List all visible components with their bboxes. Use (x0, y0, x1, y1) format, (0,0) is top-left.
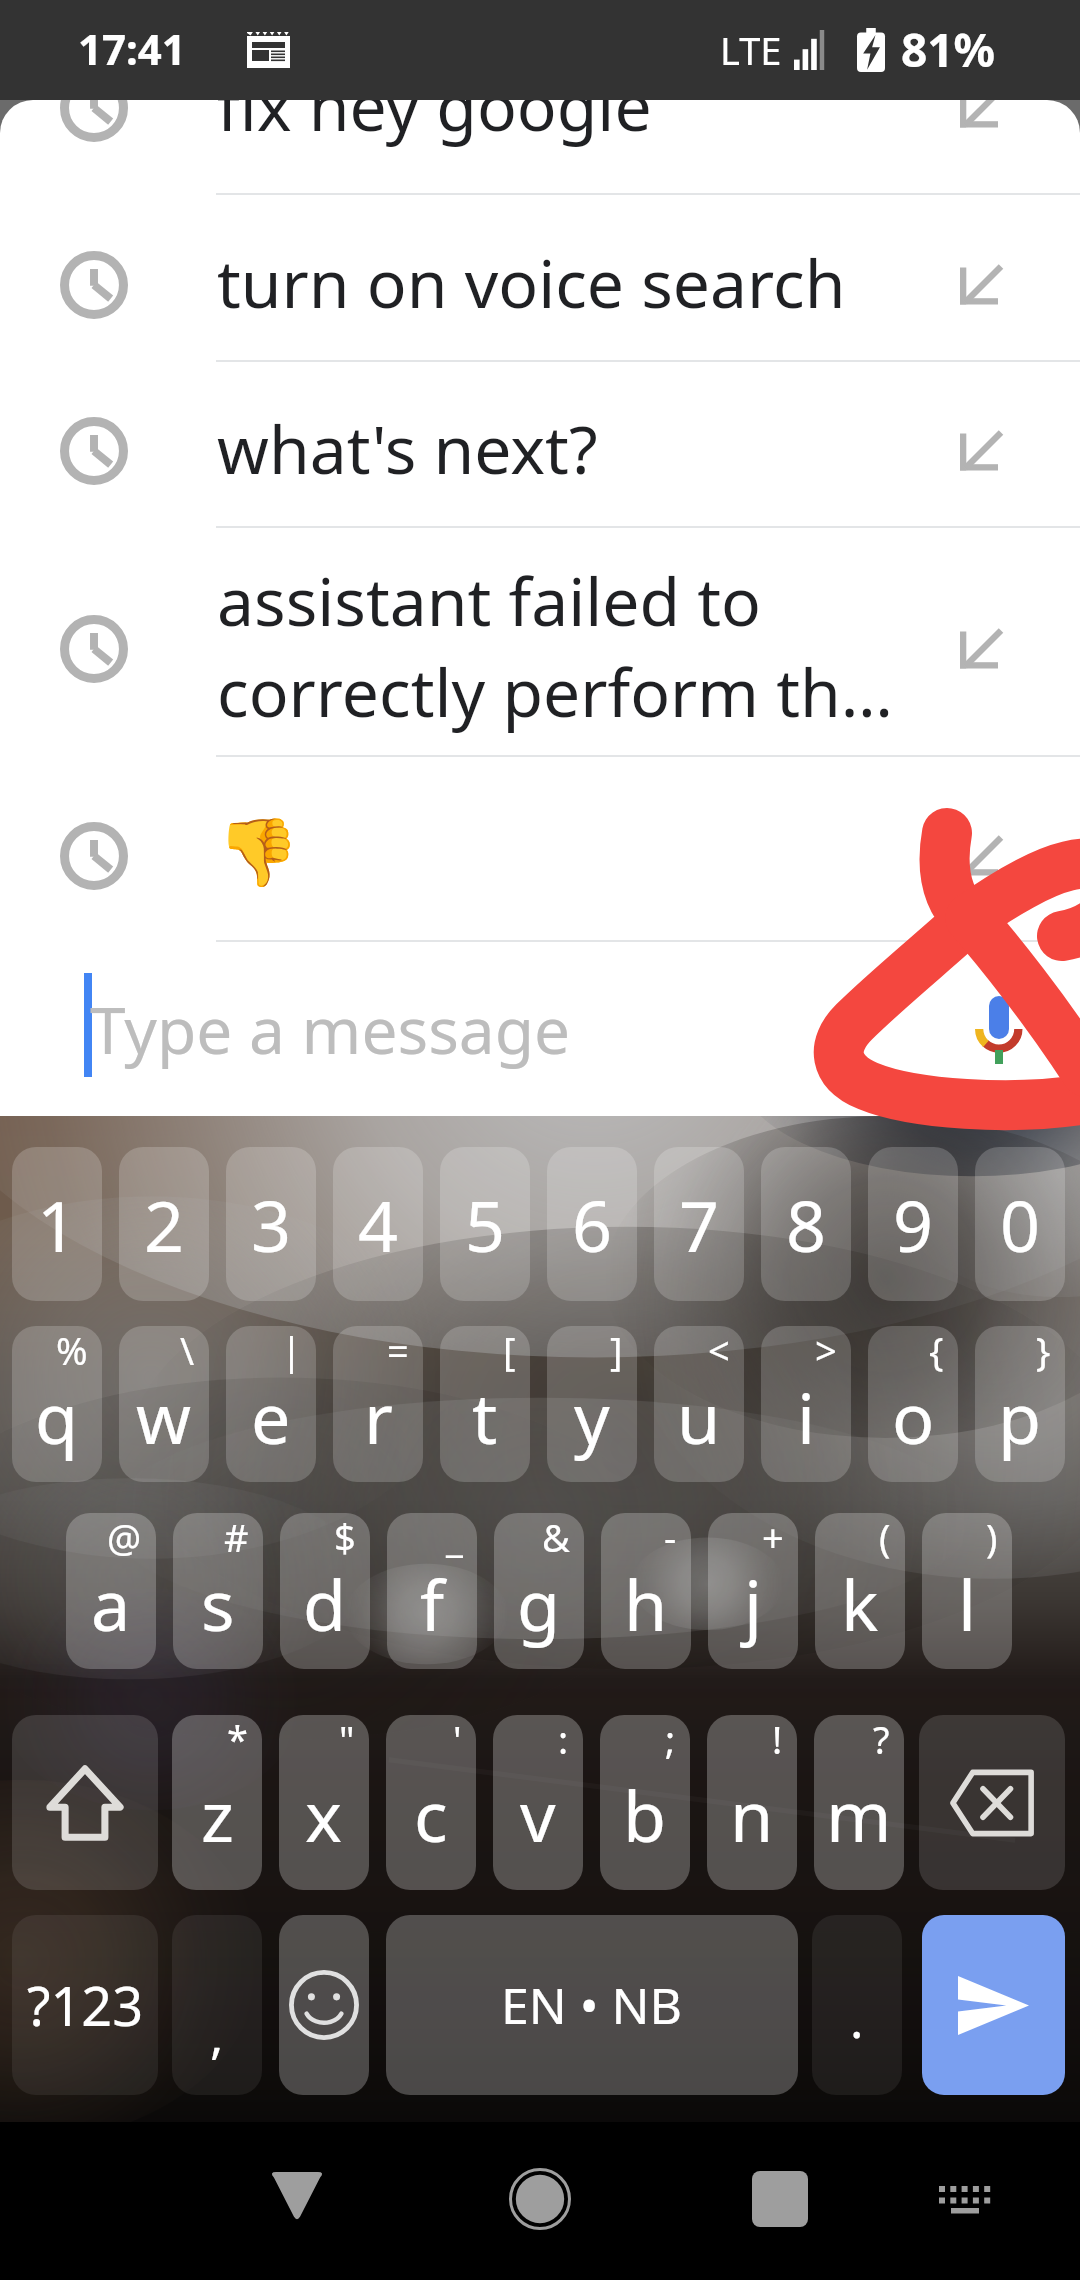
staticText: what's next? (217, 403, 598, 493)
button[interactable]: l (922, 1513, 1012, 1669)
staticText: { (929, 1326, 944, 1376)
button[interactable]: EN • NB (386, 1915, 798, 2095)
button[interactable]: 👎 (0, 757, 1080, 940)
staticText: i (797, 1369, 816, 1464)
staticText: & (542, 1513, 570, 1563)
staticText: - (664, 1513, 677, 1563)
button[interactable]: c (386, 1715, 476, 1890)
staticText: 0 (1000, 1177, 1041, 1272)
staticText: s (201, 1556, 235, 1651)
staticText: _ (446, 1513, 463, 1563)
button[interactable]: b (600, 1715, 690, 1890)
button[interactable]: Period (812, 1915, 902, 2095)
button[interactable]: what's next? (0, 362, 1080, 526)
button[interactable]: o (868, 1326, 958, 1482)
button[interactable]: 0 (975, 1147, 1065, 1301)
staticText: u (677, 1369, 721, 1464)
button[interactable]: turn on voice search (0, 195, 1080, 360)
staticText: g (517, 1556, 561, 1651)
button[interactable]: y (547, 1326, 637, 1482)
button[interactable]: v (493, 1715, 583, 1890)
button[interactable]: 8 (761, 1147, 851, 1301)
staticText: ; (665, 1715, 676, 1765)
button[interactable]: z (172, 1715, 262, 1890)
staticText: . (850, 1985, 864, 2053)
button[interactable]: u (654, 1326, 744, 1482)
staticText: z (201, 1767, 234, 1862)
staticText: LTE (720, 24, 782, 76)
button[interactable]: a (66, 1513, 156, 1669)
button[interactable]: Comma (172, 1915, 262, 2095)
staticText: EN • NB (501, 1971, 683, 2039)
staticText: q (35, 1369, 79, 1464)
staticText: o (892, 1369, 935, 1464)
button[interactable]: k (815, 1513, 905, 1669)
staticText: ' (453, 1715, 462, 1765)
button[interactable]: h (601, 1513, 691, 1669)
staticText: j (744, 1556, 763, 1651)
staticText: % (56, 1326, 88, 1376)
button[interactable]: Switch keyboard (910, 2145, 1018, 2253)
button[interactable]: x (279, 1715, 369, 1890)
button[interactable]: 2 (119, 1147, 209, 1301)
staticText: , (210, 2001, 224, 2069)
staticText: 6 (572, 1177, 613, 1272)
button[interactable]: p (975, 1326, 1065, 1482)
button[interactable]: s (173, 1513, 263, 1669)
button[interactable]: d (280, 1513, 370, 1669)
staticText: = (387, 1326, 409, 1376)
button[interactable]: Back (243, 2142, 351, 2250)
staticText: c (414, 1767, 448, 1862)
button[interactable]: 4 (333, 1147, 423, 1301)
button[interactable]: 1 (12, 1147, 102, 1301)
staticText: m (826, 1767, 892, 1862)
button[interactable]: n (707, 1715, 797, 1890)
button[interactable]: t (440, 1326, 530, 1482)
button[interactable]: g (494, 1513, 584, 1669)
button[interactable]: 9 (868, 1147, 958, 1301)
button[interactable]: Backspace (919, 1715, 1065, 1890)
staticText: ] (610, 1326, 623, 1376)
staticText: Type a message (90, 986, 571, 1073)
button[interactable]: 3 (226, 1147, 316, 1301)
button[interactable]: f (387, 1513, 477, 1669)
button[interactable]: Send (922, 1915, 1065, 2095)
staticText: w (136, 1369, 192, 1464)
staticText: k (841, 1556, 879, 1651)
button[interactable]: j (708, 1513, 798, 1669)
staticText: 7 (679, 1177, 720, 1272)
staticText: < (708, 1326, 730, 1376)
button[interactable]: e (226, 1326, 316, 1482)
button[interactable]: Recents (726, 2145, 834, 2253)
button[interactable]: 5 (440, 1147, 530, 1301)
button[interactable]: m (814, 1715, 904, 1890)
button[interactable]: Voice input (937, 967, 1061, 1091)
button[interactable]: i (761, 1326, 851, 1482)
staticText: 3 (251, 1177, 292, 1272)
button[interactable]: 7 (654, 1147, 744, 1301)
button[interactable]: ?123 (12, 1915, 158, 2095)
staticText: $ (334, 1513, 356, 1563)
staticText: 81% (901, 18, 996, 81)
button[interactable]: w (119, 1326, 209, 1482)
staticText: l (958, 1556, 977, 1651)
button[interactable]: q (12, 1326, 102, 1482)
button[interactable]: Shift (12, 1715, 158, 1890)
button[interactable]: 6 (547, 1147, 637, 1301)
staticText: ) (986, 1513, 998, 1563)
button[interactable]: r (333, 1326, 423, 1482)
staticText: ( (879, 1513, 891, 1563)
staticText: ?123 (27, 1968, 144, 2042)
button[interactable]: Emoji (279, 1915, 369, 2095)
staticText: # (224, 1513, 249, 1563)
button[interactable]: fix hey google (0, 100, 1080, 193)
staticText: 4 (358, 1177, 399, 1272)
staticText: y (574, 1369, 610, 1464)
staticText: 17:41 (78, 20, 186, 77)
button[interactable]: Home (486, 2145, 594, 2253)
button[interactable]: assistant failed to correctly perform th… (0, 528, 1080, 755)
staticText: d (303, 1556, 347, 1651)
staticText: a (91, 1556, 131, 1651)
staticText: 1 (37, 1177, 78, 1272)
staticText: " (339, 1715, 355, 1765)
